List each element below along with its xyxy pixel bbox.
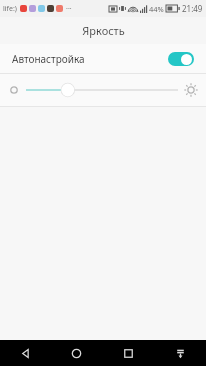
button[interactable] xyxy=(26,80,178,100)
staticText: ··· xyxy=(66,4,72,14)
button[interactable]: Home xyxy=(51,340,102,366)
other: Low brightness xyxy=(9,85,19,95)
button[interactable]: Автонастройка xyxy=(0,44,206,73)
staticText: Яркость xyxy=(82,23,125,38)
staticText: life:) xyxy=(3,4,17,14)
button[interactable]: Recents xyxy=(102,340,154,366)
staticText: 44% xyxy=(149,4,164,14)
button[interactable]: Hide navigation bar xyxy=(154,340,206,366)
button[interactable]: Back xyxy=(0,340,51,366)
staticText: Автонастройка xyxy=(12,52,85,66)
staticText: 21:49 xyxy=(182,3,203,14)
button[interactable]: Auto brightness toggle xyxy=(168,52,194,66)
other: High brightness xyxy=(185,84,197,96)
